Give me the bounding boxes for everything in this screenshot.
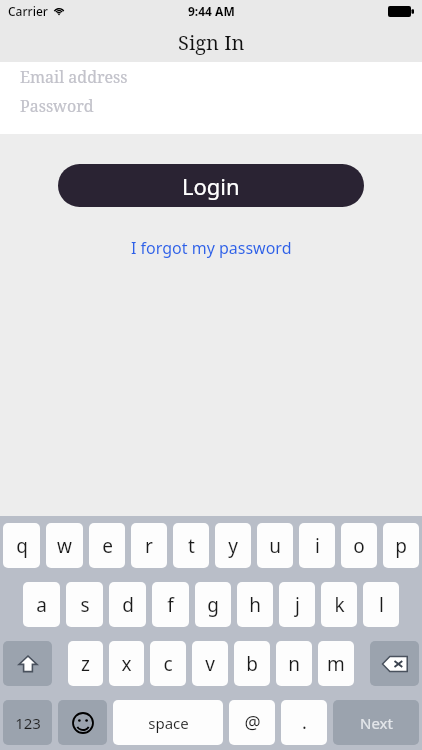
staticText: k [334,592,345,618]
button[interactable]: Password [0,91,422,120]
button[interactable]: I forgot my password [125,231,298,265]
button[interactable]: l [363,582,399,627]
staticText: m [327,651,345,677]
staticText: space [148,713,189,733]
button[interactable]: r [131,523,167,568]
staticText: a [36,592,47,618]
staticText: q [16,533,28,559]
staticText: Password [20,95,94,117]
staticText: e [102,533,113,559]
staticText: Email address [20,66,128,88]
staticText: l [379,592,384,618]
button[interactable]: f [152,582,189,627]
staticText: d [122,592,134,618]
staticText: f [167,592,174,618]
button[interactable]: Next [333,700,419,745]
button[interactable]: a [23,582,60,627]
button[interactable]: Login [58,164,364,207]
button[interactable]: y [215,523,251,568]
staticText: n [288,651,300,677]
button[interactable]: n [276,641,312,686]
button[interactable]: z [68,641,103,686]
staticText: h [249,592,261,618]
button[interactable]: u [257,523,293,568]
staticText: o [353,533,365,559]
button[interactable]: q [3,523,40,568]
staticText: . [302,710,307,735]
staticText: Next [360,713,393,733]
button[interactable]: j [279,582,315,627]
staticText: g [207,592,219,618]
staticText: y [228,533,238,559]
button[interactable]: o [341,523,377,568]
button[interactable]: . [281,700,327,745]
staticText: i [315,533,320,559]
button[interactable]: 123 [3,700,52,745]
button[interactable]: d [109,582,146,627]
staticText: 123 [15,713,41,733]
staticText: c [163,651,173,677]
staticText: x [121,651,132,677]
staticText: t [188,533,195,559]
button[interactable]: x [109,641,144,686]
staticText: v [205,651,215,677]
button[interactable]: Shift [3,641,52,686]
staticText: I forgot my password [131,237,292,259]
button[interactable]: e [89,523,125,568]
button[interactable]: Email address [0,62,422,91]
staticText: p [395,533,407,559]
staticText: 9:44 AM [188,3,235,19]
button[interactable]: k [321,582,357,627]
button[interactable]: s [66,582,103,627]
staticText: @ [244,710,261,735]
button[interactable]: p [383,523,419,568]
button[interactable]: b [234,641,270,686]
staticText: w [57,533,72,559]
button[interactable]: g [195,582,231,627]
button[interactable]: c [150,641,186,686]
staticText: u [269,533,281,559]
button[interactable]: t [173,523,209,568]
button[interactable]: m [318,641,354,686]
staticText: s [80,592,90,618]
staticText: Login [182,171,240,201]
button[interactable]: v [192,641,228,686]
staticText: b [246,651,258,677]
staticText: j [295,592,300,618]
button[interactable]: @ [229,700,275,745]
staticText: Carrier [8,3,48,19]
button[interactable]: Backspace [370,641,419,686]
staticText: z [81,651,90,677]
button[interactable]: i [299,523,335,568]
button[interactable]: Emoji [58,700,107,745]
button[interactable]: w [46,523,83,568]
staticText: Sign In [178,29,245,56]
staticText: r [145,533,153,559]
button[interactable]: h [237,582,273,627]
button[interactable]: space [113,700,223,745]
